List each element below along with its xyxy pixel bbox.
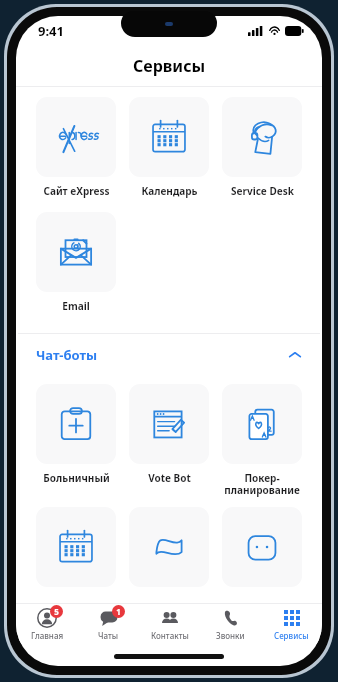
button[interactable]: Звонки: [200, 604, 261, 644]
staticText: 1: [116, 606, 121, 617]
staticText: Больничный: [43, 471, 110, 485]
staticText: Сервисы: [274, 630, 309, 641]
button[interactable]: Контакты: [139, 604, 200, 644]
button[interactable]: Email: [36, 212, 116, 313]
staticText: Email: [62, 299, 90, 313]
button[interactable]: Vote Bot: [129, 384, 209, 485]
button[interactable]: Покер-планирование: [222, 384, 302, 497]
button[interactable]: Service Desk: [222, 97, 302, 198]
staticText: Звонки: [216, 630, 245, 641]
staticText: Контакты: [151, 630, 189, 641]
button[interactable]: Сервисы: [261, 604, 322, 644]
staticText: Календарь: [141, 184, 198, 198]
staticText: 9:41: [38, 22, 64, 40]
staticText: 5: [54, 606, 59, 617]
button[interactable]: Сайт eXpress: [36, 97, 116, 198]
staticText: Service Desk: [231, 184, 294, 198]
staticText: Чаты: [98, 630, 119, 641]
staticText: Покер- планирование: [224, 471, 300, 497]
button[interactable]: Больничный: [36, 384, 116, 485]
staticText: Чат-боты: [36, 346, 98, 364]
staticText: Сервисы: [133, 55, 206, 77]
button[interactable]: Чат-боты: [16, 334, 322, 376]
staticText: Главная: [31, 630, 64, 641]
button[interactable]: Календарь: [129, 97, 209, 198]
button[interactable]: Service: [36, 507, 116, 587]
button[interactable]: 1: [78, 604, 139, 644]
staticText: Сайт eXpress: [43, 184, 110, 198]
staticText: Vote Bot: [148, 471, 191, 485]
button[interactable]: Service: [129, 507, 209, 587]
button[interactable]: 5: [16, 604, 78, 644]
button[interactable]: Service: [222, 507, 302, 587]
